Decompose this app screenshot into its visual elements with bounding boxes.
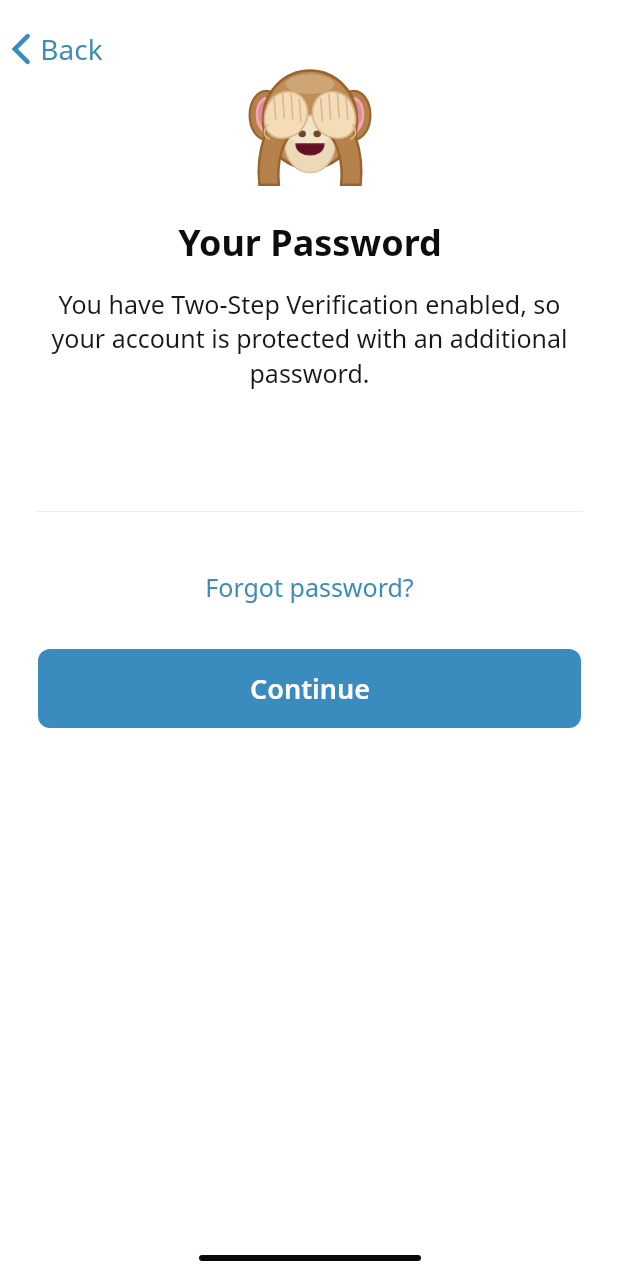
staticText: Back — [40, 30, 103, 68]
staticText: You have Two-Step Verification enabled, … — [42, 287, 577, 391]
button[interactable]: Back — [6, 26, 115, 72]
staticText: Continue — [250, 670, 370, 707]
other: See no evil monkey — [249, 64, 371, 186]
button[interactable]: Continue — [38, 649, 581, 728]
button[interactable]: Forgot password? — [195, 564, 424, 610]
staticText: Forgot password? — [205, 570, 414, 604]
staticText: Your Password — [178, 218, 442, 267]
